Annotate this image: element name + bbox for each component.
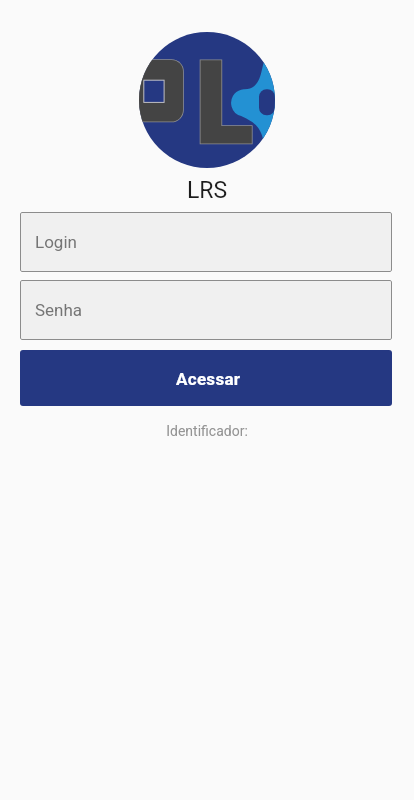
- button[interactable]: Acessar: [20, 350, 392, 406]
- staticText: Senha: [35, 300, 83, 320]
- staticText: Identificador:: [0, 423, 414, 439]
- staticText: LRS: [0, 177, 414, 204]
- staticText: Login: [35, 232, 77, 252]
- staticText: Acessar: [176, 369, 241, 389]
- button[interactable]: Login: [20, 212, 392, 272]
- button[interactable]: Senha: [20, 280, 392, 340]
